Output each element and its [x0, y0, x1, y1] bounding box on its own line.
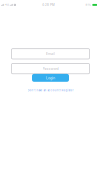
- staticText: Password: [42, 67, 58, 71]
- button[interactable]: Email: [11, 49, 89, 59]
- button[interactable]: Don't have an account? Register: [27, 89, 73, 92]
- staticText: Don't have an account? Register: [27, 89, 73, 92]
- staticText: 4G: [5, 3, 9, 6]
- staticText: Email: [46, 52, 55, 56]
- staticText: 4:28 PM: [42, 3, 55, 7]
- button[interactable]: Password: [11, 63, 89, 74]
- staticText: Login: [46, 76, 55, 80]
- staticText: 81%: [86, 3, 92, 6]
- button[interactable]: Login: [32, 74, 69, 82]
